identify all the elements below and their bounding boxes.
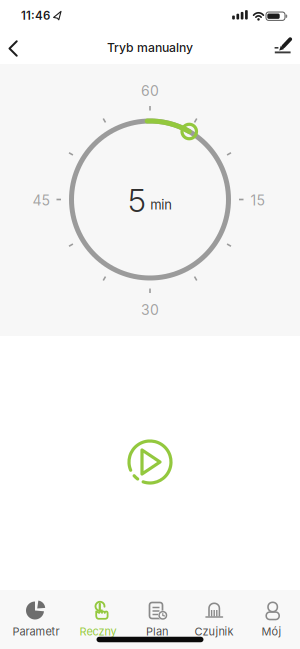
button[interactable]: Parametr bbox=[7, 590, 65, 636]
staticText: Reczny bbox=[79, 625, 116, 638]
staticText: Czujnik bbox=[194, 625, 233, 638]
staticText: Plan bbox=[146, 625, 168, 638]
staticText: 60 bbox=[141, 82, 159, 99]
staticText: Parametr bbox=[12, 625, 59, 638]
staticText: 11:46 bbox=[21, 8, 50, 22]
button[interactable]: Mój bbox=[242, 590, 300, 636]
staticText: Mój bbox=[261, 625, 281, 638]
button[interactable]: Start bbox=[123, 435, 177, 489]
staticText: 5 bbox=[128, 182, 146, 219]
button[interactable]: Back bbox=[0, 28, 44, 69]
staticText: 45 bbox=[32, 192, 50, 209]
staticText: Tryb manualny bbox=[107, 40, 193, 55]
button[interactable]: Reczny bbox=[69, 590, 127, 636]
staticText: 30 bbox=[141, 301, 159, 318]
staticText: 15 bbox=[250, 192, 265, 209]
button[interactable]: Czujnik bbox=[185, 590, 243, 636]
staticText: min bbox=[150, 197, 172, 212]
button[interactable]: Edit bbox=[253, 28, 297, 69]
button[interactable]: Plan bbox=[128, 590, 186, 636]
